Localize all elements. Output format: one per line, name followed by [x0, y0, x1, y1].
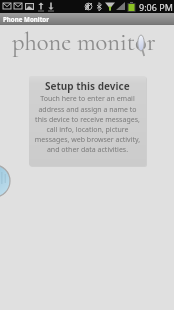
staticText: phone monitor [12, 27, 156, 57]
button[interactable]: Setup this device [29, 76, 146, 166]
staticText: 9:06 PM [139, 1, 173, 13]
staticText: Phone Monitor [3, 15, 49, 23]
staticText: Setup this device [45, 79, 130, 93]
staticText: Touch here to enter an email address and… [32, 94, 143, 154]
